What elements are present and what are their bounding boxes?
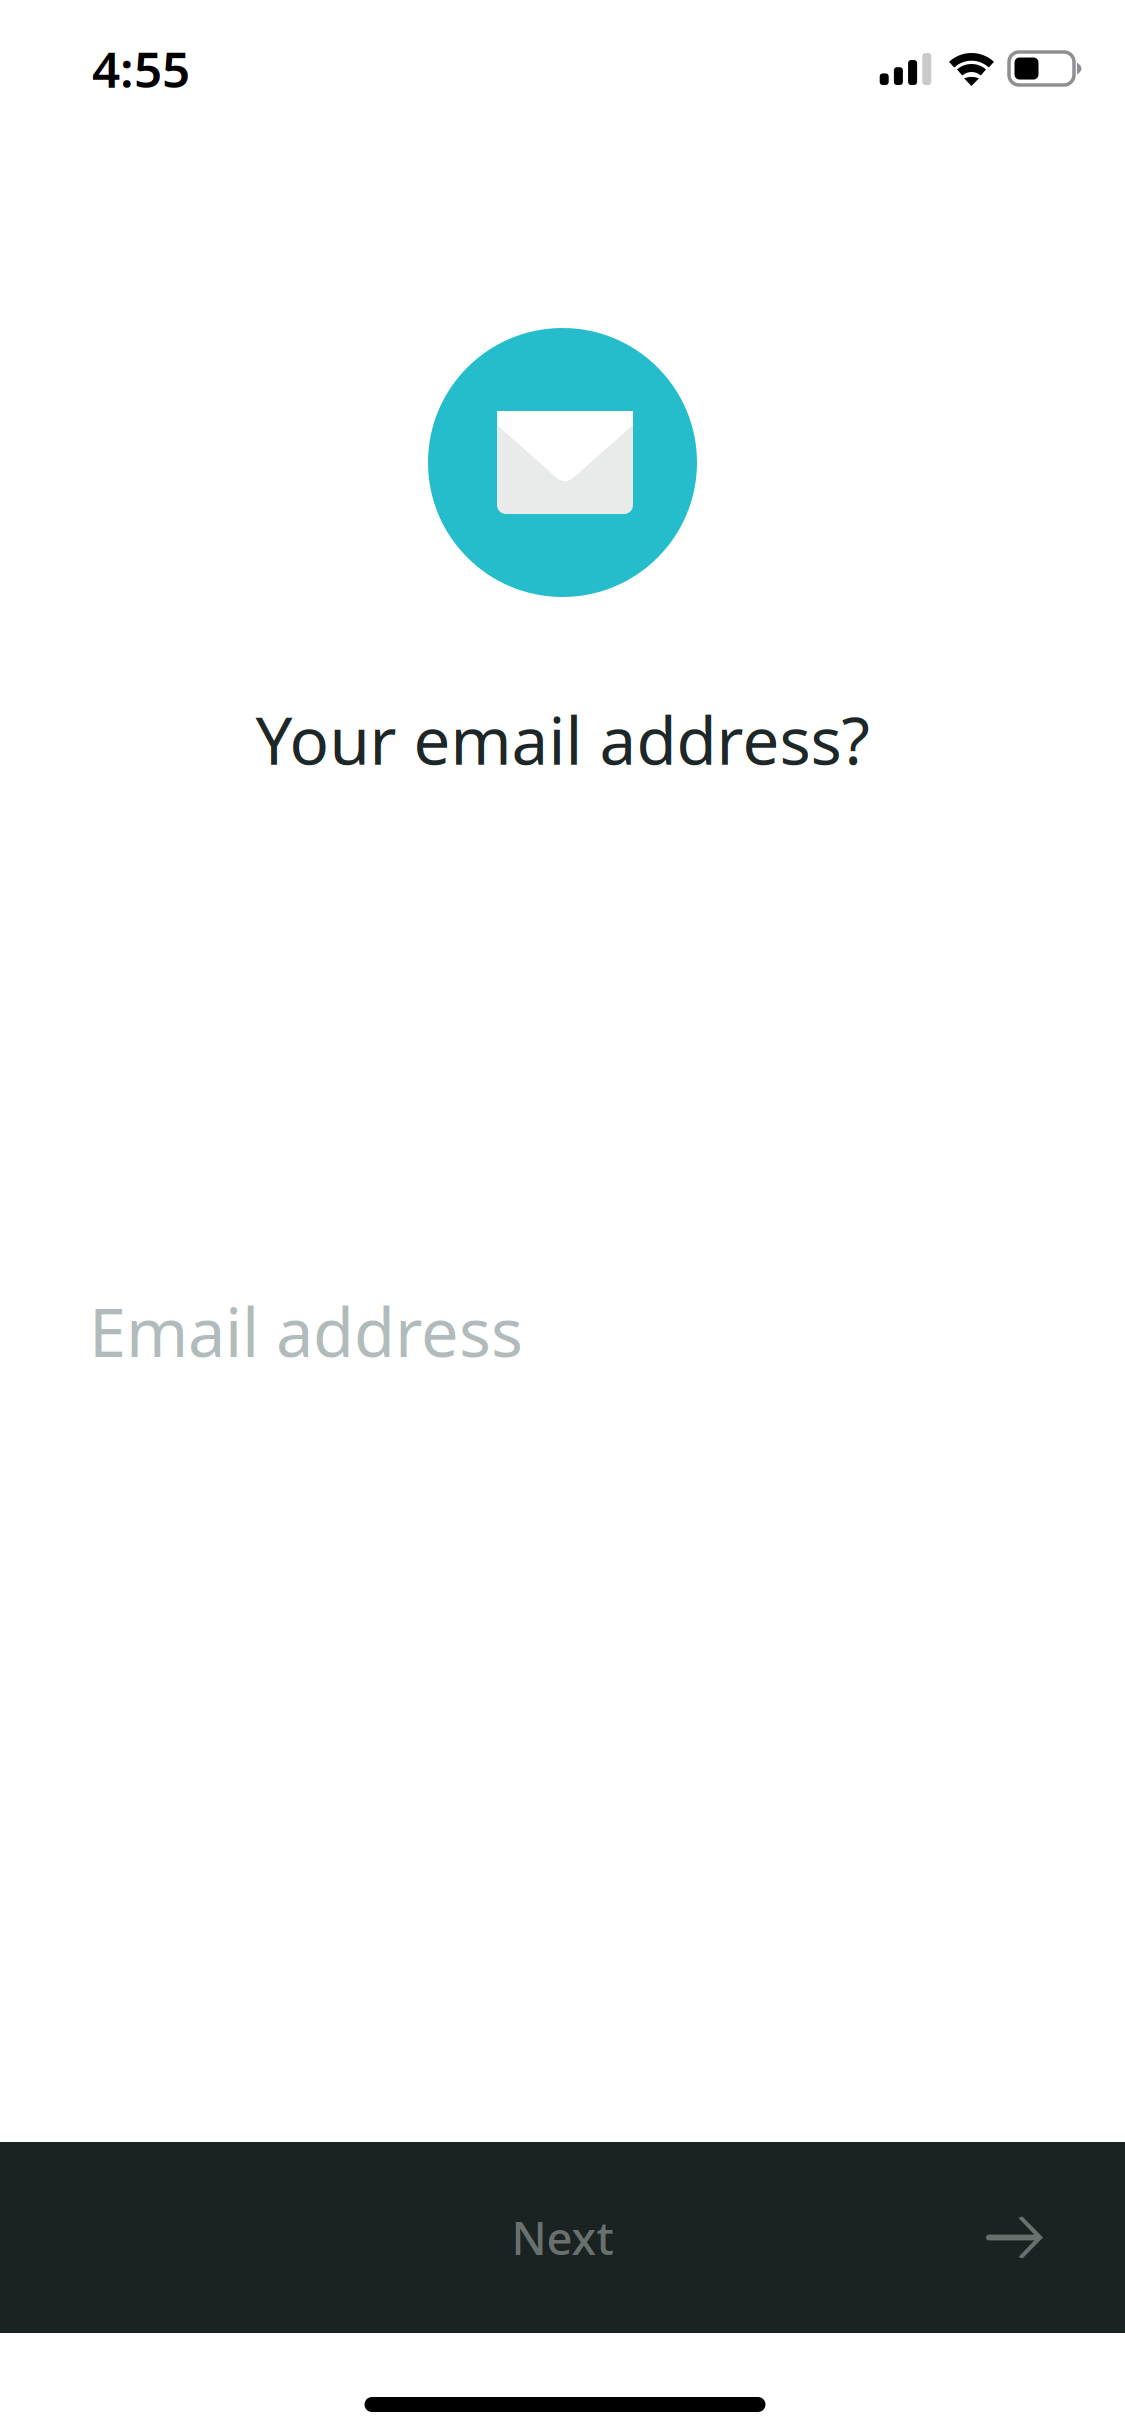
staticText: Email address: [89, 1287, 523, 1375]
staticText: 4:55: [92, 36, 190, 101]
staticText: Your email address?: [255, 696, 869, 783]
button[interactable]: Next: [0, 2142, 1125, 2333]
button[interactable]: Email address: [0, 1220, 1125, 1404]
staticText: Next: [511, 2207, 613, 2268]
